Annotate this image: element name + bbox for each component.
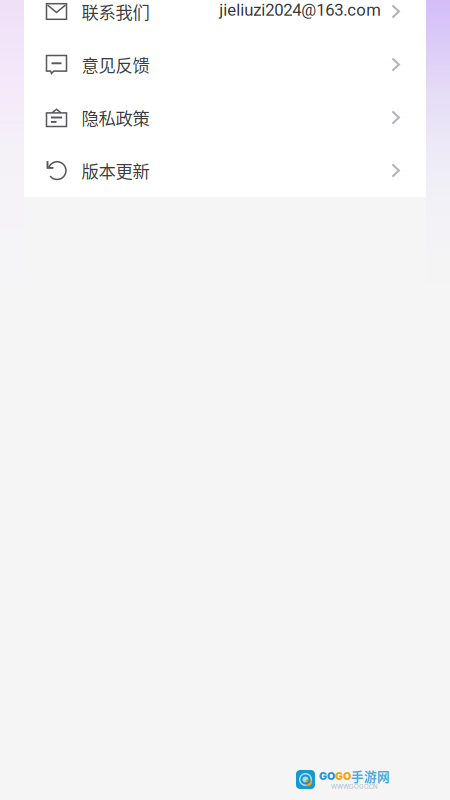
staticText: GO	[335, 769, 351, 782]
staticText: 意见反馈	[81, 52, 149, 77]
button[interactable]: 意见反馈	[24, 38, 426, 91]
staticText: WWW.GOGO.CN	[331, 783, 378, 790]
staticText: 隐私政策	[81, 105, 149, 130]
staticText: jieliuzi2024@163.com	[219, 0, 381, 20]
button[interactable]: 隐私政策	[24, 91, 426, 144]
button[interactable]: 版本更新	[24, 144, 426, 197]
staticText: 联系我们	[81, 0, 149, 24]
staticText: 手游网	[351, 767, 390, 785]
button[interactable]: 联系我们	[24, 0, 426, 38]
staticText: GO	[319, 769, 335, 782]
staticText: 版本更新	[81, 158, 149, 183]
